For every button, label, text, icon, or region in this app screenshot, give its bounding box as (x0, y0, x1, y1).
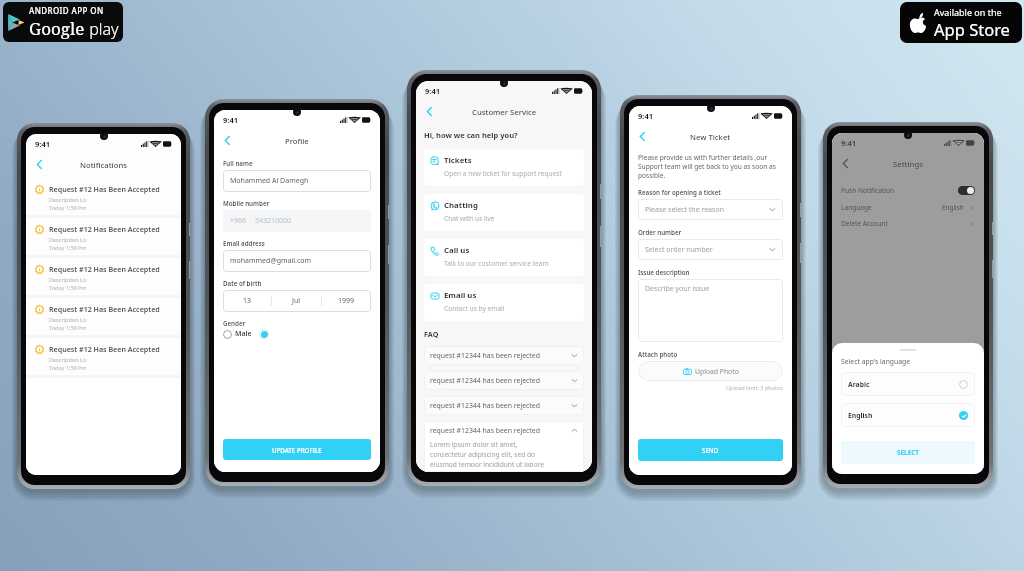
staticText: Contact us by email (444, 304, 505, 313)
staticText: Select app's language (841, 357, 911, 366)
staticText: Language (841, 203, 942, 212)
staticText: Today 1:30 Pm (49, 364, 87, 371)
button[interactable]: Email us (424, 284, 584, 321)
button[interactable]: Request #12 Has Been Accepted (26, 258, 181, 295)
button[interactable]: Request #12 Has Been Accepted (26, 298, 181, 335)
button[interactable] (223, 330, 232, 339)
button[interactable]: Upload Photo (638, 361, 783, 381)
button[interactable]: SELECT (841, 441, 975, 464)
staticText: Today 1:30 Pm (49, 284, 87, 291)
button[interactable]: Arabic (841, 372, 975, 396)
staticText: Lorem ipsum dolor sit amet, consectetur … (430, 440, 548, 467)
staticText: Request #12 Has Been Accepted (49, 264, 160, 274)
staticText: Open a new ticket for support request (444, 169, 562, 178)
button[interactable]: 13 (223, 290, 371, 312)
staticText: English (942, 203, 964, 212)
button[interactable]: Request #12 Has Been Accepted (26, 218, 181, 255)
button[interactable]: +966 (223, 210, 371, 232)
staticText: Google (29, 17, 85, 40)
button[interactable]: Call us (424, 239, 584, 276)
staticText: 13 (243, 296, 252, 306)
button[interactable]: Language (841, 202, 975, 213)
staticText: Order number (638, 228, 682, 236)
button[interactable]: ANDROID APP ON (3, 2, 123, 42)
staticText: Date of birth (223, 279, 262, 287)
staticText: request #12344 has been rejected (430, 351, 571, 360)
staticText: SELECT (897, 448, 920, 457)
button[interactable]: Back (30, 155, 49, 174)
staticText: Customer Service (472, 107, 537, 117)
staticText: FAQ (424, 329, 439, 339)
button[interactable]: SEND (638, 439, 783, 461)
button[interactable]: Back (420, 102, 439, 121)
staticText: Upload limit: 3 photos (638, 384, 783, 391)
staticText: Settings (893, 159, 923, 169)
button[interactable]: request #12344 has been rejected (424, 421, 584, 472)
button[interactable]: Chatting (424, 194, 584, 231)
staticText: Request #12 Has Been Accepted (49, 184, 160, 194)
button[interactable]: request #12344 has been rejected (424, 346, 584, 365)
button[interactable]: Please select the reason (638, 199, 783, 220)
button[interactable]: Select order number (638, 239, 783, 260)
staticText: Attach photo (638, 350, 678, 358)
button[interactable] (259, 329, 269, 339)
staticText: Description Lo (49, 276, 87, 283)
staticText: Today 1:30 Pm (49, 204, 87, 211)
button[interactable]: Tickets (424, 149, 584, 186)
staticText: Mobile number (223, 199, 270, 207)
staticText: Profile (285, 136, 309, 146)
button[interactable]: request #12344 has been rejected (424, 371, 584, 390)
staticText: 543210000 (255, 216, 292, 226)
staticText: 9:41 (425, 86, 440, 96)
staticText: Issue description (638, 268, 690, 276)
button[interactable]: UPDATE PROFILE (223, 439, 371, 460)
staticText: Full name (223, 159, 253, 167)
staticText: Today 1:30 Pm (49, 324, 87, 331)
staticText: +966 (230, 216, 247, 226)
staticText: Chat with us live (444, 214, 495, 223)
staticText: Request #12 Has Been Accepted (49, 344, 160, 354)
staticText: English (848, 411, 959, 420)
button[interactable]: Delete Account (841, 218, 975, 229)
staticText: Tickets (444, 155, 472, 166)
button[interactable]: request #12344 has been rejected (424, 396, 584, 415)
button[interactable]: Back (218, 131, 237, 150)
staticText: Available on the (934, 6, 1002, 18)
staticText: request #12344 has been rejected (430, 426, 571, 435)
staticText: App Store (934, 18, 1010, 40)
staticText: Today 1:30 Pm (49, 244, 87, 251)
button[interactable]: Describe your issue (638, 279, 783, 342)
staticText: Push Notification (841, 186, 958, 195)
button[interactable]: mohammed@gmail.com (223, 250, 371, 272)
staticText: Request #12 Has Been Accepted (49, 304, 160, 314)
button[interactable]: English (841, 403, 975, 427)
staticText: request #12344 has been rejected (430, 401, 571, 410)
staticText: Call us (444, 245, 470, 256)
button[interactable]: Mohammed Al Damegh (223, 170, 371, 192)
staticText: ANDROID APP ON (29, 5, 104, 16)
staticText: Select order number (645, 245, 769, 255)
staticText: Description Lo (49, 356, 87, 363)
staticText: Email address (223, 239, 265, 247)
staticText: UPDATE PROFILE (272, 446, 322, 454)
staticText: Email us (444, 290, 477, 301)
staticText: Hi, how we can help you? (424, 130, 518, 140)
staticText: Notifications (80, 160, 127, 170)
staticText: Arabic (848, 380, 959, 389)
staticText: request #12344 has been rejected (430, 376, 571, 385)
button[interactable]: Request #12 Has Been Accepted (26, 178, 181, 215)
staticText: Please select the reason (645, 205, 769, 215)
staticText: Male (235, 329, 252, 339)
staticText: Please provide us with further details ,… (638, 153, 783, 180)
button[interactable]: Request #12 Has Been Accepted (26, 338, 181, 375)
button[interactable]: Available on the (900, 2, 1022, 43)
button[interactable]: Back (633, 127, 652, 146)
staticText: SEND (702, 446, 719, 454)
staticText: Description Lo (49, 236, 87, 243)
staticText: New Ticket (690, 132, 731, 142)
staticText: Chatting (444, 200, 478, 211)
button[interactable]: Push Notification (841, 185, 975, 196)
button[interactable]: Back (836, 154, 855, 173)
staticText: 9:41 (35, 139, 50, 149)
staticText: Gender (223, 319, 246, 327)
